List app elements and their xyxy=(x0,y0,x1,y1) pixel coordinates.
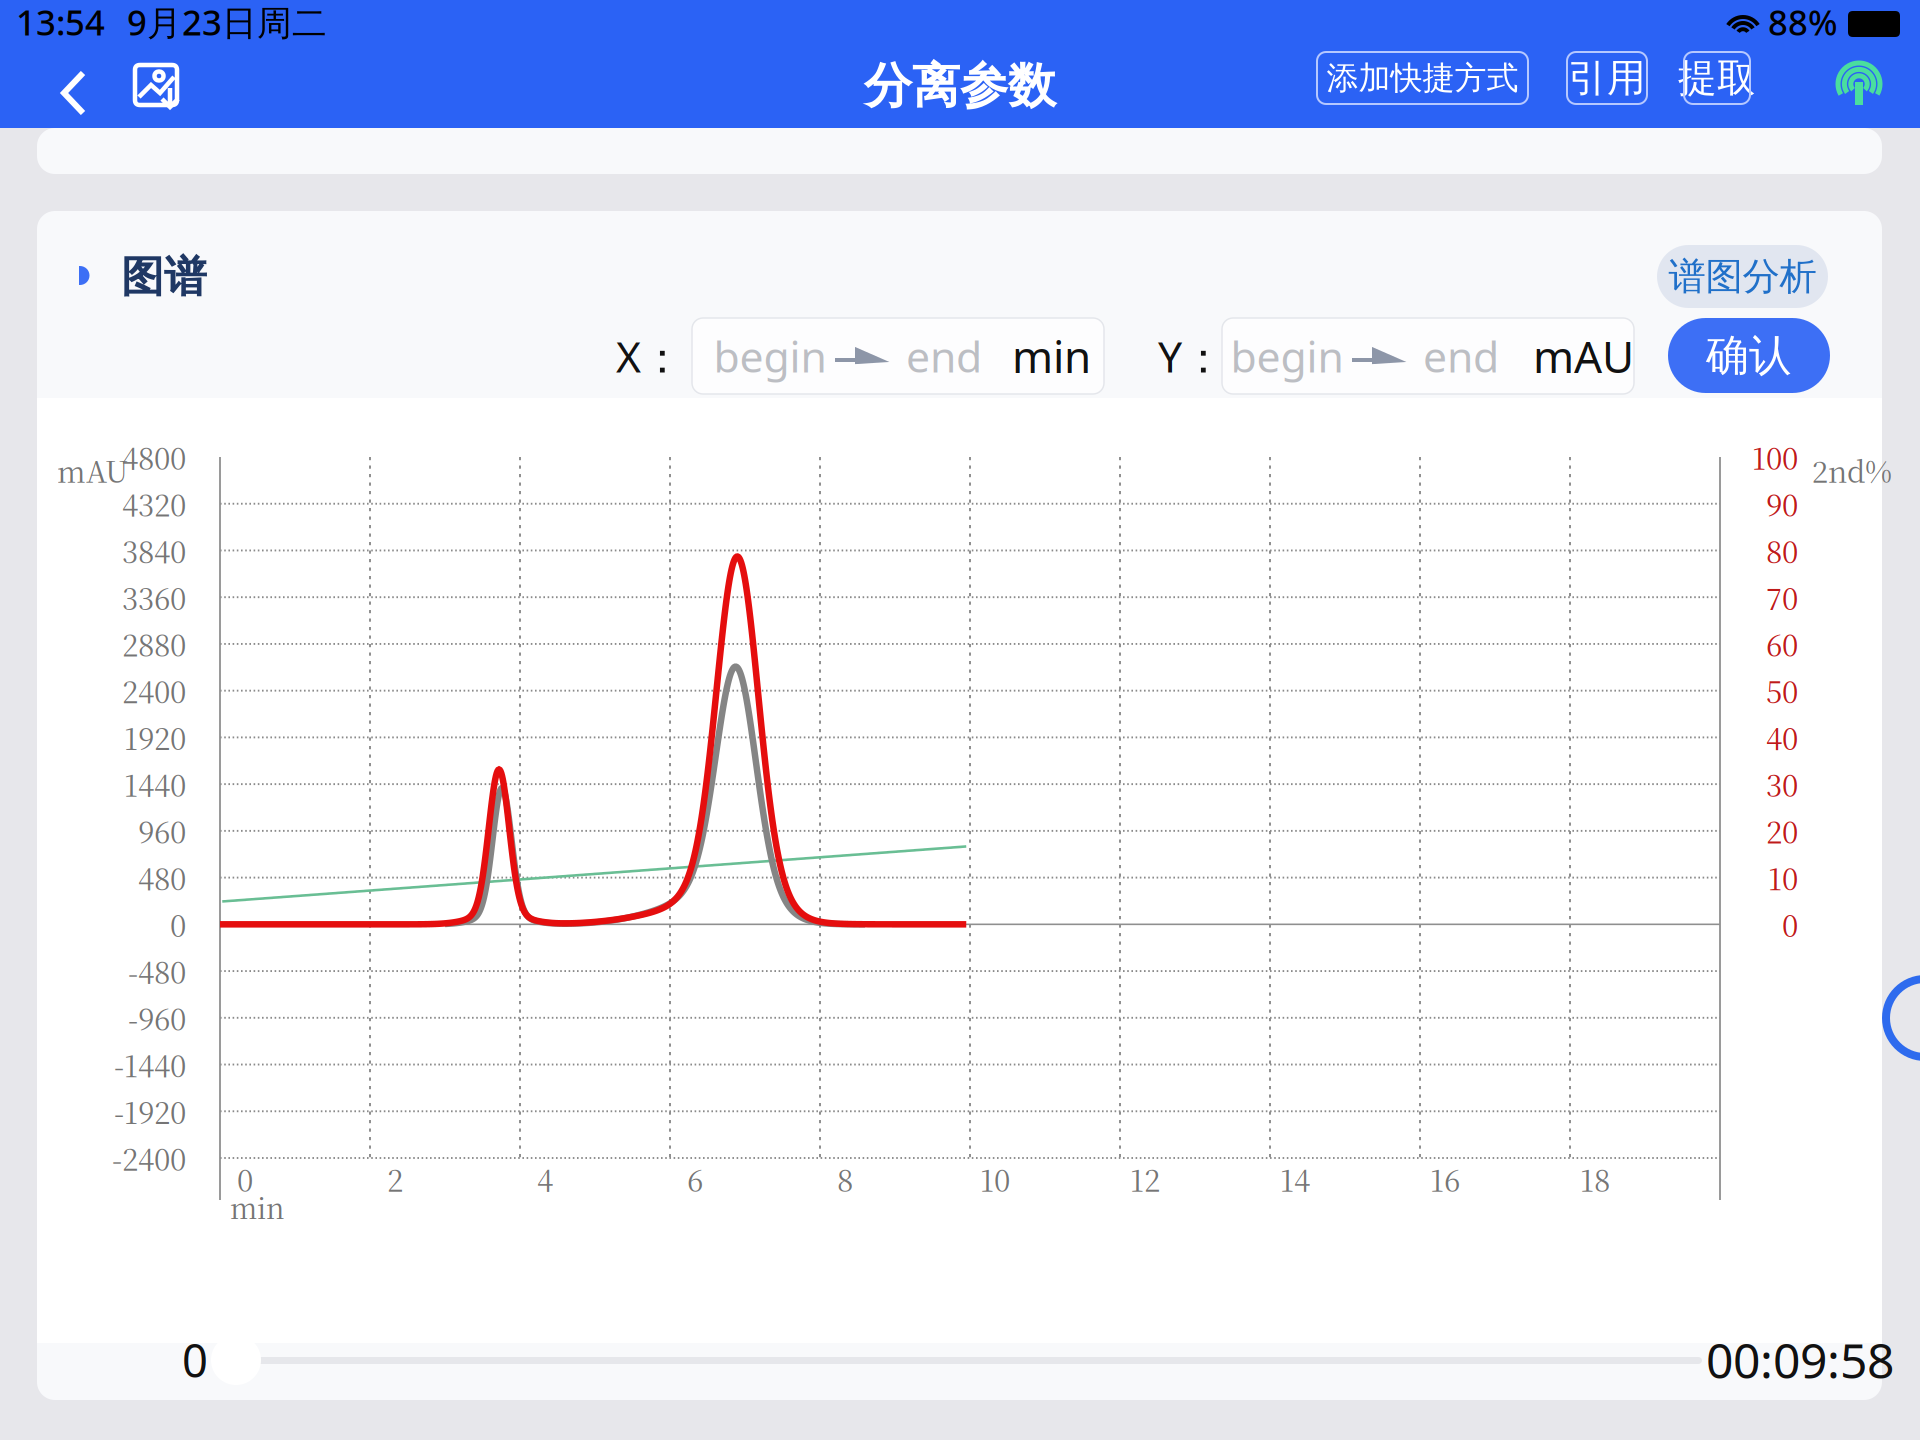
staticText: 引用 xyxy=(1568,54,1646,102)
staticText: 12 xyxy=(1130,1158,1160,1200)
staticText: 10 xyxy=(1768,856,1798,899)
staticText: 分离参数 xyxy=(864,56,1056,115)
staticText: 谱图分析 xyxy=(1668,254,1816,299)
staticText: 0 xyxy=(170,903,186,945)
staticText: 50 xyxy=(1766,670,1798,712)
staticText: 960 xyxy=(138,810,186,852)
button[interactable]: Back xyxy=(38,52,112,136)
staticText: 9月23日周二 xyxy=(127,0,327,45)
staticText: 1440 xyxy=(124,763,186,805)
staticText: 0 xyxy=(1782,903,1798,945)
staticText: 6 xyxy=(687,1158,703,1200)
staticText: 添加快捷方式 xyxy=(1326,58,1518,98)
staticText: 10 xyxy=(980,1158,1010,1200)
staticText: 0 xyxy=(237,1158,253,1200)
staticText: mAU xyxy=(1533,327,1634,385)
button[interactable]: 提取 xyxy=(1684,52,1750,104)
button[interactable]: Connection status xyxy=(1822,48,1898,124)
staticText: 4800 xyxy=(122,436,186,478)
staticText: 2880 xyxy=(122,623,186,665)
button[interactable]: 添加快捷方式 xyxy=(1317,52,1528,104)
staticText: 2400 xyxy=(122,670,186,712)
staticText: 14 xyxy=(1280,1158,1310,1200)
staticText: 100 xyxy=(1752,436,1798,478)
staticText: 13:54 xyxy=(16,0,105,45)
staticText: 3840 xyxy=(122,529,186,572)
staticText: Y： xyxy=(1158,328,1225,384)
staticText: 18 xyxy=(1580,1158,1610,1200)
staticText: -1440 xyxy=(114,1043,186,1086)
staticText: min xyxy=(1012,327,1091,385)
staticText: 1920 xyxy=(124,716,186,758)
staticText: 40 xyxy=(1766,716,1798,758)
staticText: 30 xyxy=(1766,763,1798,805)
staticText: 70 xyxy=(1766,576,1798,618)
staticText: 4320 xyxy=(122,483,186,525)
staticText: 80 xyxy=(1766,529,1798,572)
staticText: 480 xyxy=(138,856,186,899)
staticText: -2400 xyxy=(112,1137,186,1179)
staticText: 00:09:58 xyxy=(1706,1328,1894,1392)
staticText: 8 xyxy=(837,1158,853,1200)
staticText: -480 xyxy=(128,950,186,992)
button[interactable]: 确认 xyxy=(1668,318,1830,393)
staticText: 60 xyxy=(1766,623,1798,665)
staticText: 4 xyxy=(537,1158,553,1200)
staticText: -960 xyxy=(128,997,186,1039)
button[interactable]: Save image xyxy=(120,48,202,130)
staticText: 确认 xyxy=(1706,329,1792,382)
staticText: 提取 xyxy=(1678,54,1756,102)
staticText: 2 xyxy=(387,1158,403,1200)
button[interactable]: 引用 xyxy=(1567,52,1647,104)
staticText: 88% xyxy=(1768,0,1838,45)
staticText: mAU xyxy=(57,449,128,491)
staticText: end xyxy=(906,328,982,384)
staticText: 16 xyxy=(1430,1158,1460,1200)
staticText: X： xyxy=(616,328,684,384)
staticText: begin xyxy=(713,328,826,384)
staticText: 20 xyxy=(1766,810,1798,852)
staticText: begin xyxy=(1230,328,1343,384)
staticText: end xyxy=(1423,328,1499,384)
staticText: 90 xyxy=(1766,483,1798,525)
staticText: 0 xyxy=(182,1330,208,1390)
button[interactable]: 谱图分析 xyxy=(1657,245,1828,308)
staticText: min xyxy=(230,1187,285,1227)
staticText: 2nd% xyxy=(1812,449,1892,491)
staticText: 图谱 xyxy=(121,251,207,303)
staticText: 3360 xyxy=(122,576,186,618)
staticText: -1920 xyxy=(114,1090,186,1132)
